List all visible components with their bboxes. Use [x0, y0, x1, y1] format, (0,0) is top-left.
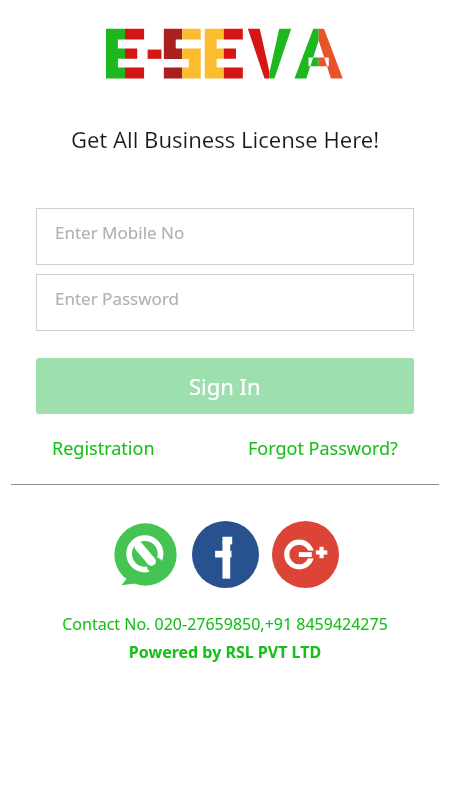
button[interactable]: WhatsApp — [109, 518, 181, 590]
button[interactable]: Sign In — [36, 358, 414, 414]
staticText: Sign In — [189, 371, 261, 401]
staticText: Enter Password — [55, 287, 180, 310]
button[interactable]: Registration — [52, 436, 155, 461]
staticText: Get All Business License Here! — [0, 124, 450, 154]
staticText: Contact No. 020-27659850,+91 8459424275 — [0, 613, 450, 635]
button[interactable]: Facebook — [189, 518, 261, 590]
staticText: Forgot Password? — [248, 436, 398, 461]
button[interactable]: Enter Password — [36, 274, 414, 331]
button[interactable]: Forgot Password? — [248, 436, 398, 461]
button[interactable]: Enter Mobile No — [36, 208, 414, 265]
button[interactable]: Google Plus — [269, 518, 341, 590]
staticText: Enter Mobile No — [55, 221, 185, 244]
staticText: Powered by RSL PVT LTD — [0, 641, 450, 663]
staticText: Registration — [52, 436, 155, 461]
